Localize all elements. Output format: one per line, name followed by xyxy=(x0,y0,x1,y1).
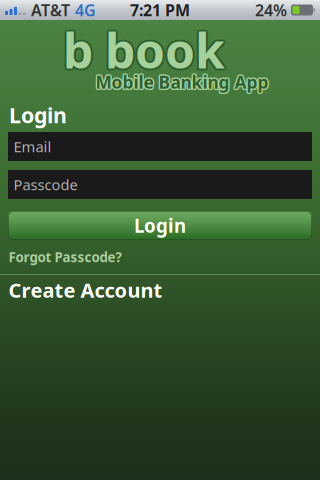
staticText: b book xyxy=(64,19,226,83)
staticText: b book xyxy=(61,18,223,82)
staticText: Mobile Banking App xyxy=(97,70,270,93)
staticText: Passcode xyxy=(13,175,77,194)
staticText: b book xyxy=(64,17,226,80)
staticText: 7:21 PM xyxy=(130,0,190,21)
staticText: Login xyxy=(134,213,186,238)
staticText: Mobile Banking App xyxy=(96,71,269,94)
staticText: Forgot Passcode? xyxy=(8,248,121,266)
staticText: b book xyxy=(62,19,224,83)
staticText: Create Account xyxy=(8,277,162,303)
staticText: Email xyxy=(13,137,51,156)
button[interactable]: Create Account xyxy=(0,273,320,307)
staticText: b book xyxy=(63,18,225,82)
staticText: AT&T xyxy=(31,0,70,21)
staticText: Mobile Banking App xyxy=(95,72,268,95)
staticText: 24% xyxy=(255,0,287,21)
staticText: Mobile Banking App xyxy=(95,71,268,94)
button[interactable]: Email xyxy=(8,132,312,161)
staticText: Mobile Banking App xyxy=(95,69,268,92)
staticText: Mobile Banking App xyxy=(95,70,268,93)
button[interactable]: Passcode xyxy=(8,170,312,199)
staticText: b book xyxy=(63,20,225,84)
staticText: 4G xyxy=(75,0,96,21)
staticText: b book xyxy=(63,16,225,80)
button[interactable]: Forgot Passcode? xyxy=(0,245,320,269)
staticText: Mobile Banking App xyxy=(95,70,268,93)
staticText: b book xyxy=(65,18,227,82)
staticText: b book xyxy=(62,17,224,80)
staticText: Login xyxy=(9,101,67,129)
button[interactable]: Login xyxy=(8,211,312,240)
staticText: Mobile Banking App xyxy=(94,70,267,93)
staticText: Mobile Banking App xyxy=(96,70,269,93)
